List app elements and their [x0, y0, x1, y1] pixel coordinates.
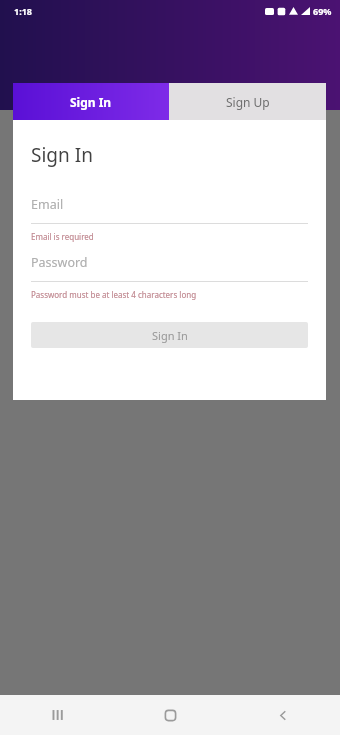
- staticText: Sign In: [152, 328, 188, 343]
- staticText: Password must be at least 4 characters l…: [31, 289, 197, 300]
- button[interactable]: Sign In: [13, 83, 169, 120]
- staticText: Email: [31, 196, 64, 213]
- button[interactable]: Recent apps: [0, 695, 114, 735]
- staticText: Sign In: [70, 94, 112, 110]
- staticText: Email is required: [31, 231, 94, 242]
- staticText: Sign In: [31, 142, 93, 168]
- staticText: 69%: [313, 5, 332, 17]
- staticText: 1:18: [14, 5, 32, 17]
- button[interactable]: Back: [227, 695, 340, 735]
- staticText: Password: [31, 254, 88, 271]
- button[interactable]: Home: [114, 695, 227, 735]
- staticText: Sign Up: [226, 94, 270, 110]
- button[interactable]: Sign In: [31, 322, 308, 348]
- button[interactable]: Sign Up: [169, 83, 326, 120]
